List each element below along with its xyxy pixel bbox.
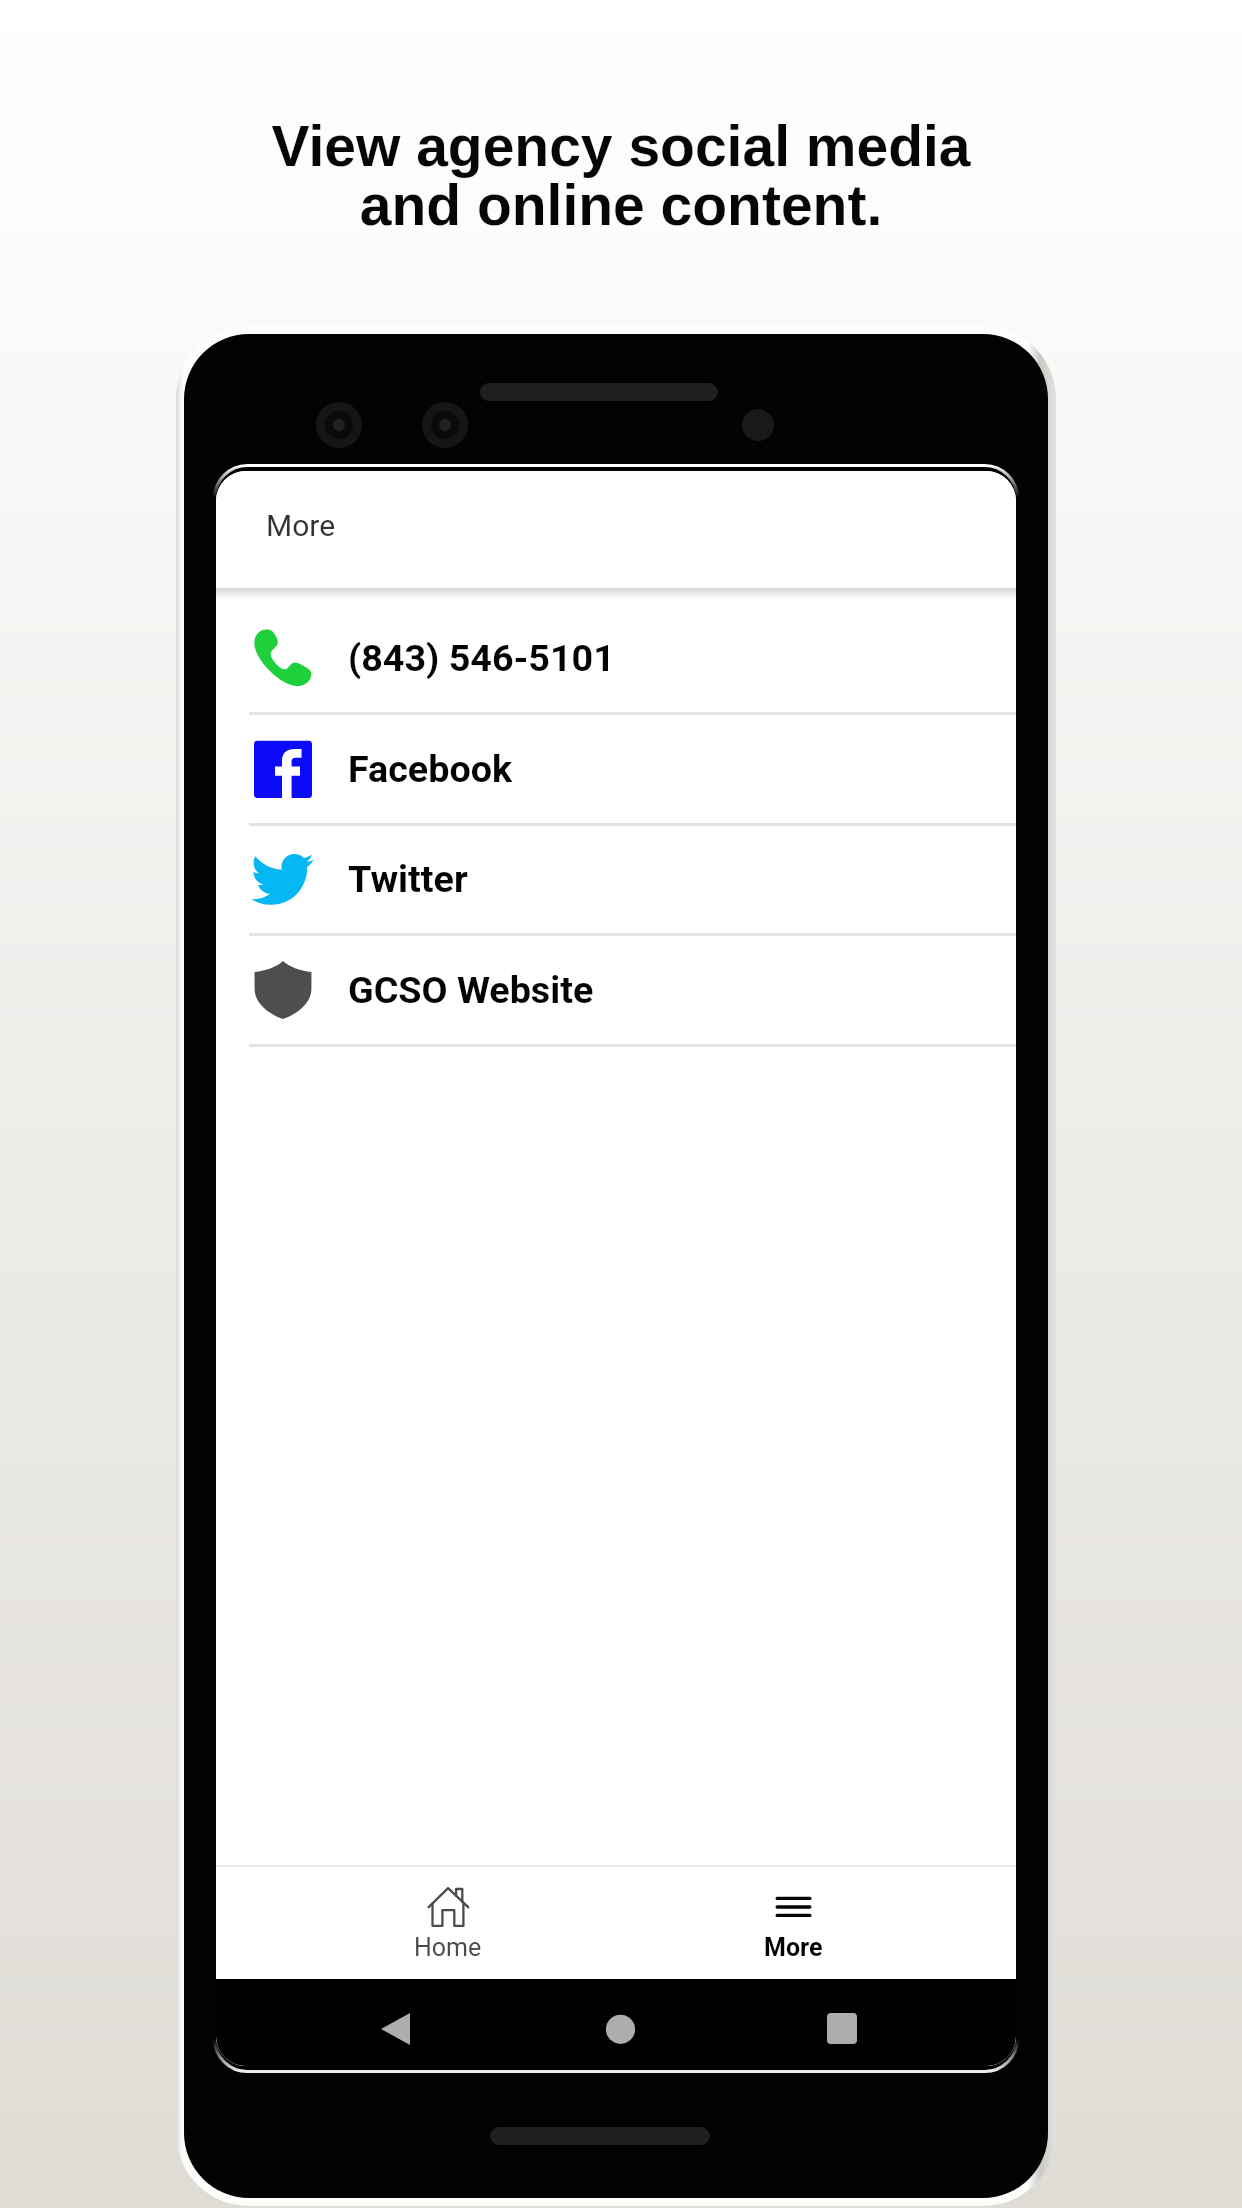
- button[interactable]: GCSO Website: [216, 936, 1016, 1047]
- other: GCSO Website: [254, 961, 312, 1019]
- button[interactable]: Twitter: [216, 825, 1016, 936]
- button[interactable]: More: [713, 1867, 873, 1979]
- staticText: (843) 546-5101: [348, 636, 615, 680]
- button[interactable]: Facebook: [216, 715, 1016, 826]
- other: Call: [254, 629, 312, 687]
- staticText: Twitter: [348, 857, 468, 901]
- other: Twitter: [254, 850, 312, 908]
- staticText: More: [266, 508, 336, 543]
- staticText: Home: [414, 1933, 482, 1962]
- other: More: [772, 1887, 815, 1930]
- staticText: GCSO Website: [348, 968, 594, 1012]
- button[interactable]: Call: [216, 604, 1016, 715]
- staticText: More: [764, 1933, 823, 1962]
- staticText: Facebook: [348, 747, 513, 791]
- other: Facebook: [254, 740, 312, 798]
- other: Home: [427, 1887, 470, 1930]
- button[interactable]: Home: [368, 1867, 528, 1979]
- staticText: View agency social media and online cont…: [271, 114, 971, 237]
